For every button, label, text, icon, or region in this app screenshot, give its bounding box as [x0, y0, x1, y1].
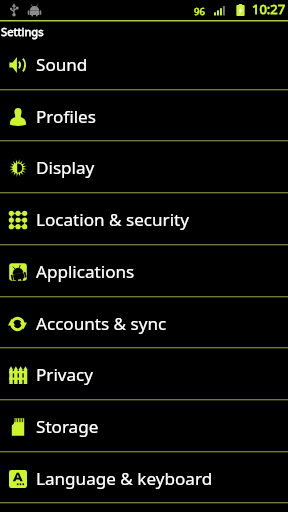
- staticText: Profiles: [36, 105, 96, 128]
- staticText: Location & security: [36, 208, 189, 231]
- staticText: Display: [36, 156, 95, 179]
- button[interactable]: Sound: [0, 40, 288, 92]
- button[interactable]: Applications: [0, 247, 288, 299]
- staticText: Storage: [36, 415, 99, 438]
- button[interactable]: Storage: [0, 402, 288, 454]
- staticText: Privacy: [36, 363, 94, 386]
- button[interactable]: Privacy: [0, 350, 288, 402]
- button[interactable]: Accounts & sync: [0, 299, 288, 351]
- staticText: 96: [194, 5, 205, 16]
- button[interactable]: Profiles: [0, 92, 288, 144]
- staticText: Accounts & sync: [36, 312, 167, 335]
- staticText: 10:27: [252, 0, 286, 18]
- staticText: Applications: [36, 260, 135, 283]
- staticText: Settings: [1, 24, 44, 39]
- staticText: Language & keyboard: [36, 467, 213, 490]
- button[interactable]: Location & security: [0, 195, 288, 247]
- staticText: Sound: [36, 53, 88, 76]
- button[interactable]: Display: [0, 143, 288, 195]
- button[interactable]: Language & keyboard: [0, 454, 288, 506]
